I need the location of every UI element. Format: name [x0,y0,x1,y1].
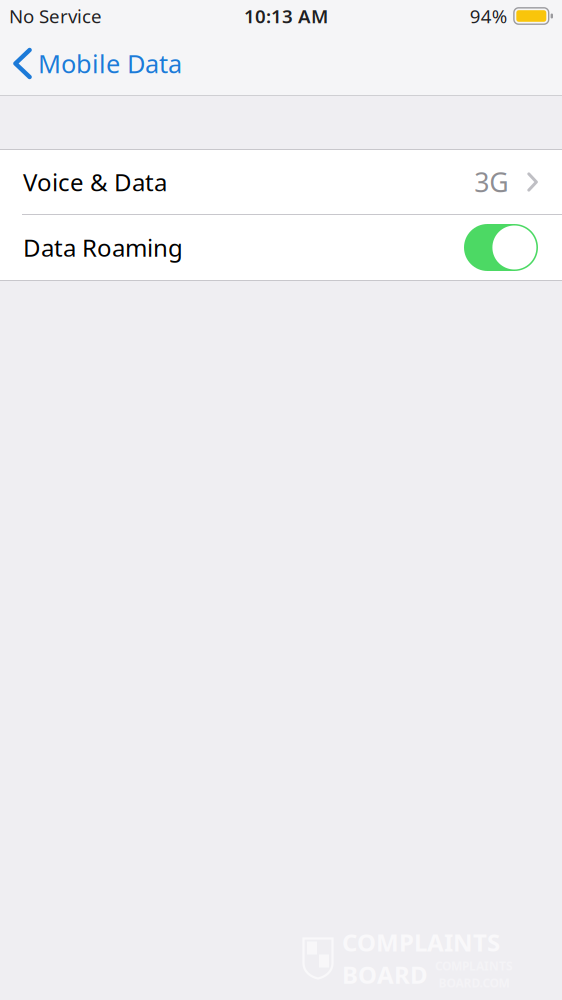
staticText: No Service [9,4,102,28]
staticText: 94% [470,4,508,28]
staticText: 3G [474,164,508,200]
button[interactable]: Mobile Data [0,32,196,95]
staticText: BOARD [342,958,428,990]
staticText: Voice & Data [23,166,167,198]
button[interactable]: Voice & Data [0,150,562,214]
staticText: 10:13 AM [244,4,328,28]
staticText: Mobile Data [38,47,182,80]
staticText: COMPLAINTS [342,926,500,958]
button[interactable]: On [0,215,562,280]
staticText: Data Roaming [23,232,183,263]
